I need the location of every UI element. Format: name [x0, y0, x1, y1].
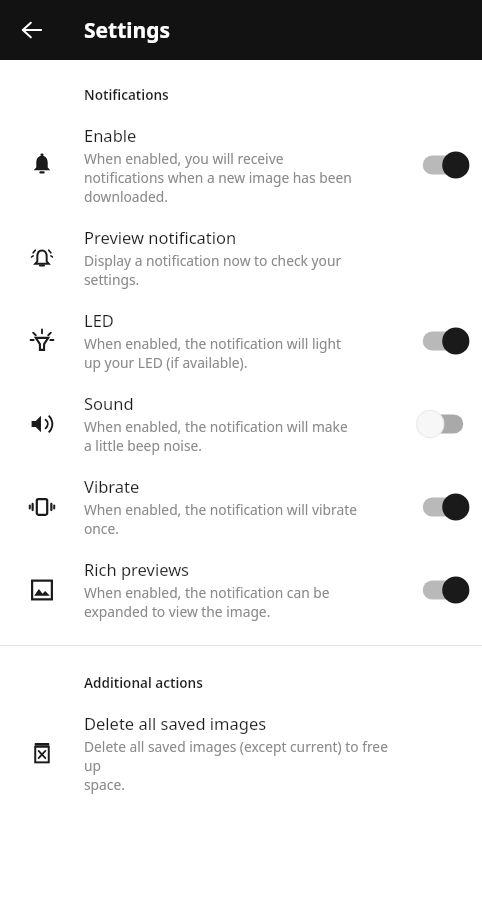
staticText: When enabled, the notification will ligh…	[84, 334, 342, 372]
staticText: When enabled, the notification can be ex…	[84, 583, 330, 621]
staticText: Enable	[84, 124, 137, 146]
staticText: Display a notification now to check your…	[84, 251, 396, 289]
staticText: Notifications	[84, 86, 169, 104]
staticText: Preview notification	[84, 226, 237, 248]
button[interactable]: Toggle on	[417, 573, 469, 607]
button[interactable]: Delete all saved images	[0, 702, 482, 804]
button[interactable]: LED	[0, 299, 482, 382]
button[interactable]: Rich previews	[0, 548, 482, 631]
button[interactable]: Toggle on	[417, 148, 469, 182]
staticText: Rich previews	[84, 558, 190, 580]
staticText: Additional actions	[84, 674, 203, 692]
staticText: Delete all saved images (except current)…	[84, 737, 396, 794]
staticText: Sound	[84, 392, 134, 414]
button[interactable]: Toggle on	[417, 324, 469, 358]
staticText: When enabled, the notification will make…	[84, 417, 348, 455]
staticText: LED	[84, 309, 114, 331]
button[interactable]: Vibrate	[0, 465, 482, 548]
button[interactable]: Toggle off	[417, 407, 469, 441]
button[interactable]: Sound	[0, 382, 482, 465]
staticText: When enabled, the notification will vibr…	[84, 500, 357, 538]
staticText: Vibrate	[84, 475, 140, 497]
staticText: Settings	[84, 16, 171, 45]
button[interactable]: Preview notification	[0, 216, 482, 299]
button[interactable]: Back	[8, 6, 56, 54]
staticText: When enabled, you will receive notificat…	[84, 149, 352, 206]
button[interactable]: Enable	[0, 114, 482, 216]
staticText: Delete all saved images	[84, 712, 267, 734]
button[interactable]: Toggle on	[417, 490, 469, 524]
